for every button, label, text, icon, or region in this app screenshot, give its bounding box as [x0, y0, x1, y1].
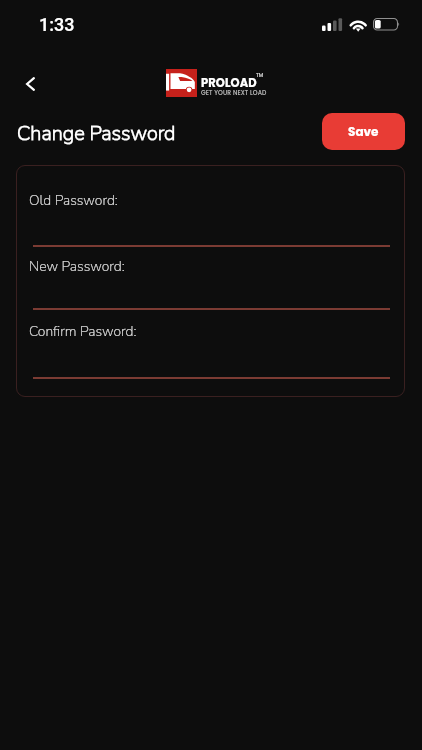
staticText: TM — [256, 72, 264, 79]
staticText: Save — [348, 123, 379, 140]
staticText: Confirm Pasword: — [29, 322, 137, 341]
staticText: New Password: — [29, 257, 125, 276]
staticText: PROLOAD — [201, 75, 257, 91]
button[interactable]: Save — [322, 113, 405, 150]
staticText: 1:33 — [39, 14, 75, 35]
button[interactable]: Back — [14, 68, 46, 100]
staticText: Change Password — [17, 120, 176, 147]
staticText: GET YOUR NEXT LOAD — [201, 89, 267, 98]
staticText: Old Password: — [29, 191, 118, 210]
